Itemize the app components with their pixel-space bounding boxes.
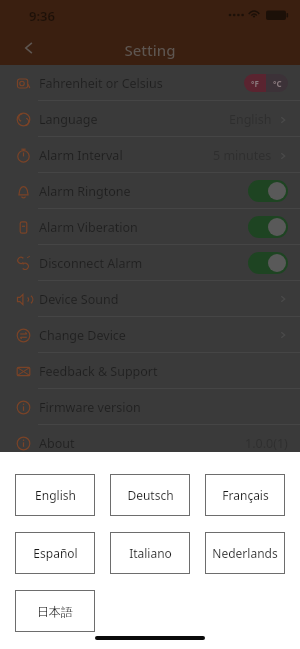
staticText: Language [39, 111, 98, 128]
staticText: Device Sound [39, 291, 119, 308]
staticText: Fahrenheit or Celsius [39, 75, 163, 92]
button[interactable] [248, 216, 288, 238]
button[interactable]: °F [244, 74, 288, 92]
staticText: Firmware version [39, 399, 141, 416]
button[interactable]: Disconnect Alarm [0, 245, 300, 281]
button[interactable]: Device Sound [0, 281, 300, 317]
button[interactable]: Français [205, 474, 285, 516]
staticText: English [229, 111, 272, 128]
staticText: Nederlands [212, 545, 278, 561]
button[interactable]: Alarm Ringtone [0, 173, 300, 209]
staticText: 9:36 [29, 7, 55, 25]
staticText: Alarm Viberation [39, 219, 138, 236]
staticText: About [39, 435, 75, 452]
button[interactable]: Fahrenheit or Celsius [0, 65, 300, 101]
staticText: Alarm Ringtone [39, 183, 131, 200]
staticText: Español [33, 545, 78, 561]
staticText: Disconnect Alarm [39, 255, 143, 272]
button[interactable]: Language [0, 101, 300, 137]
staticText: 1.0.0(1) [245, 435, 288, 452]
staticText: Deutsch [127, 487, 174, 503]
staticText: Change Device [39, 327, 126, 344]
button[interactable]: Italiano [110, 532, 190, 574]
button[interactable]: English [15, 474, 95, 516]
staticText: 5 minutes [213, 147, 272, 164]
button[interactable] [248, 252, 288, 274]
button[interactable] [248, 180, 288, 202]
button[interactable]: Español [15, 532, 95, 574]
staticText: °F [251, 78, 259, 89]
button[interactable]: Alarm Viberation [0, 209, 300, 245]
button[interactable]: Alarm Interval [0, 137, 300, 173]
staticText: Setting [0, 40, 300, 60]
button[interactable]: About [0, 425, 300, 461]
staticText: Français [222, 487, 269, 503]
button[interactable]: Firmware version [0, 389, 300, 425]
button[interactable]: Change Device [0, 317, 300, 353]
staticText: Alarm Interval [39, 147, 123, 164]
staticText: °C [273, 78, 282, 89]
staticText: English [35, 487, 76, 503]
staticText: 日本語 [37, 604, 73, 619]
staticText: Italiano [129, 545, 172, 561]
button[interactable]: Nederlands [205, 532, 285, 574]
button[interactable]: Feedback & Support [0, 353, 300, 389]
button[interactable]: Deutsch [110, 474, 190, 516]
staticText: Feedback & Support [39, 363, 158, 380]
button[interactable]: Back [14, 34, 44, 62]
button[interactable]: 日本語 [15, 590, 95, 632]
